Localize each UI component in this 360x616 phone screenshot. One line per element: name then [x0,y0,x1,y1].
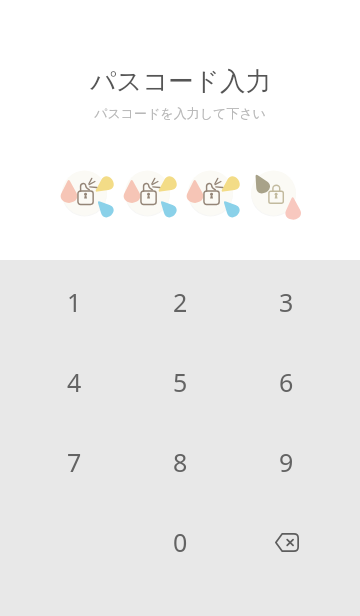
button[interactable]: 9 [233,422,339,502]
button[interactable]: Delete [233,502,339,582]
staticText: 2 [173,285,188,319]
staticText: 0 [173,525,188,559]
staticText: 6 [279,365,294,399]
staticText: 8 [173,445,188,479]
staticText: 4 [67,365,82,399]
button[interactable]: 4 [21,342,127,422]
button[interactable]: 2 [127,262,233,342]
button[interactable]: 6 [233,342,339,422]
staticText: 1 [67,285,82,319]
staticText: 7 [67,445,82,479]
button[interactable]: 0 [127,502,233,582]
staticText: パスコード入力 [90,65,271,97]
button[interactable]: 5 [127,342,233,422]
button[interactable]: 3 [233,262,339,342]
staticText: 5 [173,365,188,399]
button[interactable]: 7 [21,422,127,502]
staticText: 9 [279,445,294,479]
button[interactable]: 1 [21,262,127,342]
staticText: 3 [279,285,294,319]
button[interactable]: 8 [127,422,233,502]
staticText: パスコードを入力して下さい [94,105,266,121]
